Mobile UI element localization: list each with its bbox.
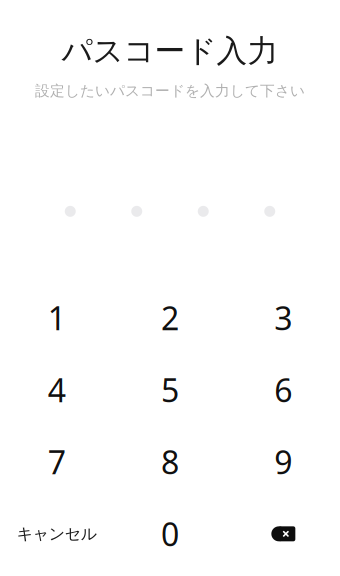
button[interactable]: 削除 (227, 498, 340, 570)
staticText: 6 (274, 369, 292, 411)
staticText: 3 (274, 297, 292, 339)
button[interactable]: 3 (227, 282, 340, 354)
button[interactable]: 7 (0, 426, 113, 498)
staticText: 2 (161, 297, 179, 339)
staticText: 設定したいパスコードを入力して下さい (35, 82, 305, 100)
button[interactable]: 1 (0, 282, 113, 354)
button[interactable]: 5 (113, 354, 227, 426)
staticText: キャンセル (17, 524, 97, 544)
button[interactable]: 2 (113, 282, 227, 354)
button[interactable]: 4 (0, 354, 113, 426)
staticText: 5 (161, 369, 179, 411)
button[interactable]: 0 (113, 498, 227, 570)
staticText: 4 (48, 369, 66, 411)
button[interactable]: キャンセル (0, 498, 113, 570)
staticText: 1 (48, 297, 66, 339)
staticText: 7 (48, 441, 66, 483)
staticText: 8 (161, 441, 179, 483)
staticText: パスコード入力 (61, 32, 278, 70)
button[interactable]: 8 (113, 426, 227, 498)
button[interactable]: 6 (227, 354, 340, 426)
staticText: 0 (161, 513, 179, 555)
staticText: 9 (274, 441, 292, 483)
button[interactable]: 9 (227, 426, 340, 498)
